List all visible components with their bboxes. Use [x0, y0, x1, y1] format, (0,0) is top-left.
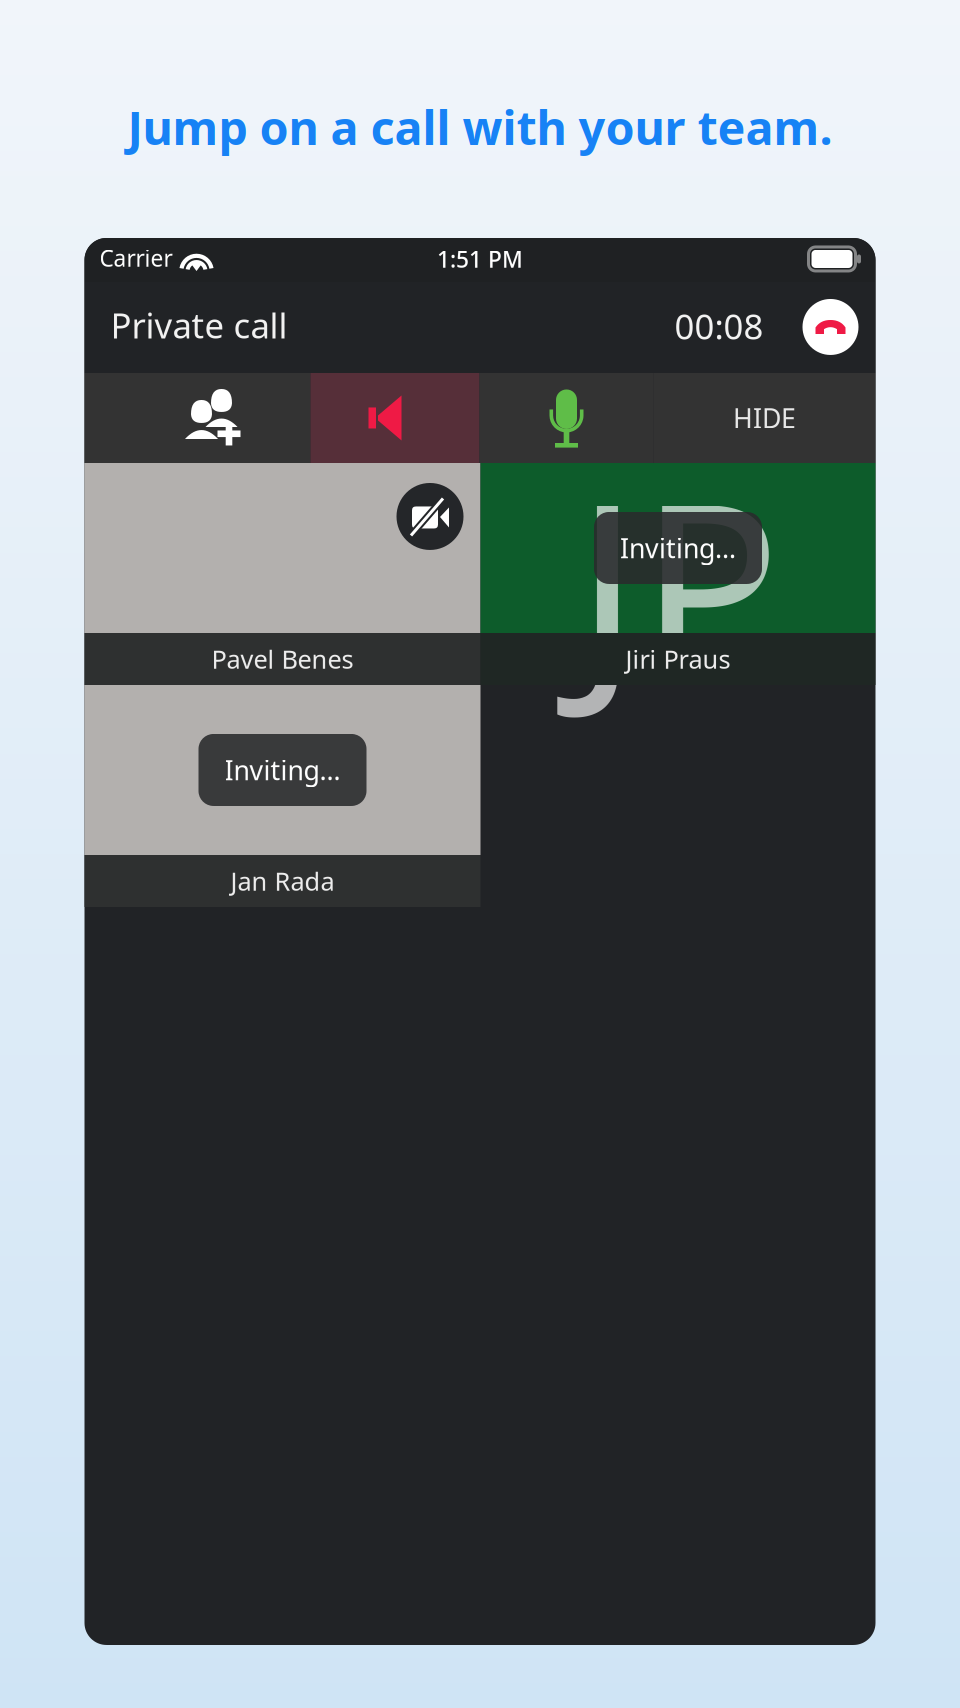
staticText: Jump on a call with your team.: [127, 96, 832, 158]
button[interactable]: Microphone: [479, 373, 653, 463]
staticText: 00:08: [674, 303, 763, 349]
button[interactable]: HIDE: [653, 373, 875, 463]
button[interactable]: Add participants: [84, 373, 310, 463]
staticText: 1:51 PM: [437, 244, 523, 274]
staticText: JP: [575, 427, 780, 737]
staticText: Inviting…: [620, 530, 736, 566]
button[interactable]: End call: [802, 299, 858, 355]
staticText: Pavel Benes: [211, 642, 353, 676]
staticText: Private call: [110, 302, 287, 348]
staticText: Jiri Praus: [625, 642, 730, 676]
staticText: Inviting…: [224, 752, 340, 788]
button[interactable]: Speaker: [310, 373, 479, 463]
staticText: Carrier: [99, 243, 172, 273]
staticText: Jan Rada: [230, 864, 334, 898]
staticText: HIDE: [733, 400, 796, 436]
